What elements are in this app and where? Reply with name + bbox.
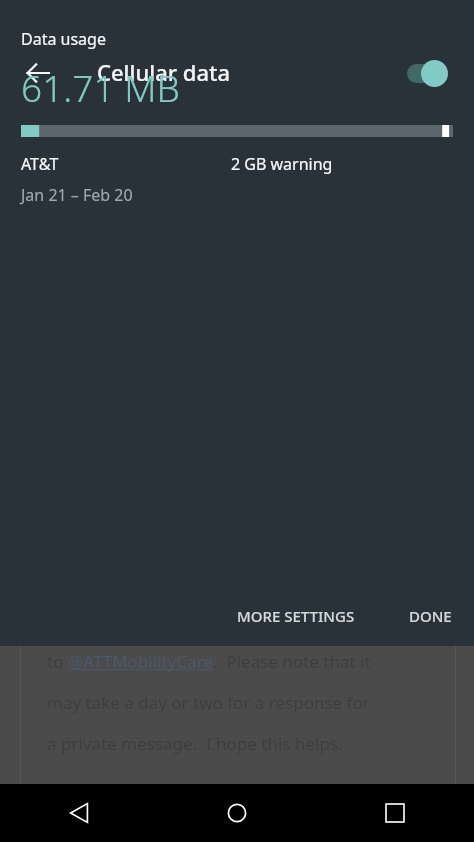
staticText: . Please note that it [213,650,371,673]
staticText: AT&T [21,153,59,175]
staticText: Jan 21 – Feb 20 [21,184,133,206]
staticText: @ATTMobilityCare [68,650,213,673]
button[interactable]: Recent apps [316,784,474,842]
staticText: MORE SETTINGS [237,606,355,626]
staticText: Cellular data [97,57,231,87]
button[interactable]: Back [0,784,158,842]
staticText: may take a day or two for a response for [47,691,370,714]
button[interactable]: DONE [395,594,466,638]
staticText: Data usage [21,28,106,50]
button[interactable]: Cellular data toggle [396,50,460,96]
button[interactable]: Home [158,784,316,842]
staticText: a private message. I hope this helps. [47,732,343,755]
staticText: to [47,650,68,673]
staticText: 61.71 MB [21,62,180,112]
staticText: DONE [409,606,452,626]
button[interactable]: Back [14,49,62,97]
button[interactable]: MORE SETTINGS [223,594,369,638]
staticText: 2 GB warning [231,153,333,175]
